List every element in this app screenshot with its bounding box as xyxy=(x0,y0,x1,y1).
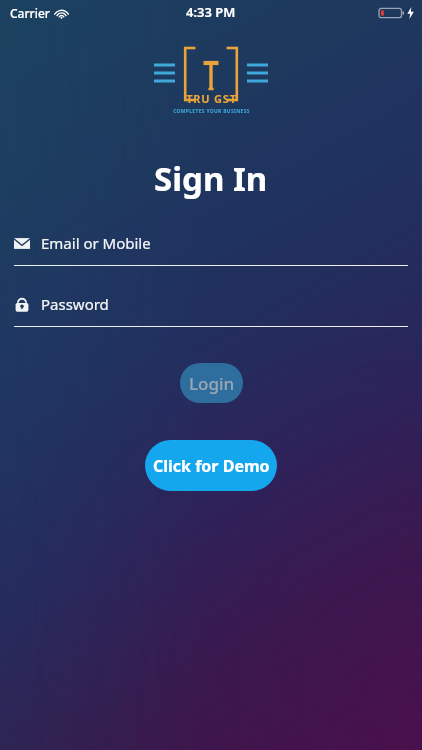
button[interactable]: Email or Mobile xyxy=(14,233,408,266)
staticText: Click for Demo xyxy=(153,455,270,477)
staticText: Email or Mobile xyxy=(41,233,151,253)
staticText: Carrier xyxy=(10,5,50,21)
staticText: Login xyxy=(189,372,235,395)
button[interactable]: Password xyxy=(14,294,408,327)
staticText: TRU GST xyxy=(186,91,237,106)
staticText: COMPLETES YOUR BUSINESS xyxy=(173,108,250,115)
staticText: Password xyxy=(41,294,109,314)
button[interactable]: Login xyxy=(180,363,243,403)
staticText: Sign In xyxy=(154,156,268,201)
button[interactable]: Click for Demo xyxy=(145,440,277,491)
staticText: 4:33 PM xyxy=(186,3,236,21)
